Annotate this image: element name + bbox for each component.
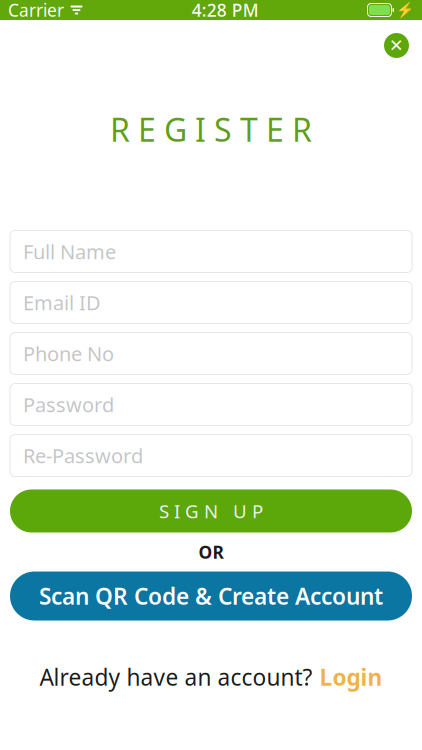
staticText: Password xyxy=(23,391,114,418)
staticText: Already have an account? xyxy=(39,662,312,692)
staticText: ⚡ xyxy=(396,2,414,18)
staticText: ✕ xyxy=(389,36,404,55)
staticText: 4:28 PM xyxy=(192,0,259,21)
staticText: Login xyxy=(319,662,382,692)
button[interactable]: Close xyxy=(384,33,409,58)
button[interactable]: Login xyxy=(319,662,382,692)
staticText: Re-Password xyxy=(23,442,143,469)
staticText: Phone No xyxy=(23,340,114,367)
staticText: Scan QR Code & Create Account xyxy=(39,581,383,611)
button[interactable]: S I G N U P xyxy=(10,489,412,532)
staticText: OR xyxy=(198,540,223,563)
staticText: Email ID xyxy=(23,289,101,316)
button[interactable]: Scan QR Code & Create Account xyxy=(10,571,412,620)
staticText: R E G I S T E R xyxy=(110,108,312,150)
staticText: Carrier xyxy=(8,0,64,21)
staticText: S I G N U P xyxy=(159,499,263,523)
staticText: Full Name xyxy=(23,238,116,265)
